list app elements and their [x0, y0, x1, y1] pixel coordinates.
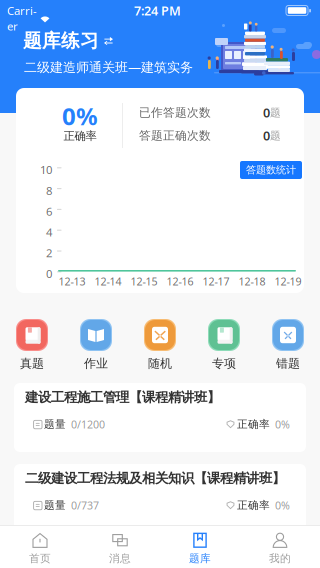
- button[interactable]: 首页: [0, 530, 80, 566]
- staticText: 题: [270, 129, 281, 142]
- button[interactable]: 我的: [240, 530, 320, 566]
- staticText: 12-13: [58, 274, 85, 288]
- staticText: 正确率: [237, 417, 270, 431]
- staticText: 0/1200: [68, 417, 105, 431]
- button[interactable]: 作业: [64, 319, 128, 371]
- button[interactable]: 答题数统计: [240, 161, 302, 179]
- staticText: 我的: [269, 552, 291, 565]
- staticText: 8: [46, 183, 52, 198]
- staticText: 答题数统计: [246, 164, 296, 176]
- staticText: 12-18: [238, 274, 265, 288]
- staticText: 正确率: [63, 129, 96, 143]
- staticText: 12-17: [202, 274, 229, 288]
- button[interactable]: 二级建设工程法规及相关知识【课程精讲班】: [14, 464, 306, 533]
- staticText: 已作答题次数: [139, 105, 211, 120]
- staticText: 二级建造师通关班—建筑实务: [24, 58, 193, 76]
- staticText: 12-19: [274, 274, 301, 288]
- staticText: 0: [46, 266, 52, 281]
- staticText: 4: [46, 224, 52, 240]
- staticText: 6: [46, 204, 52, 219]
- staticText: 7:24 PM: [134, 2, 181, 19]
- button[interactable]: 建设工程施工管理【课程精讲班】: [14, 383, 306, 452]
- staticText: 首页: [29, 552, 51, 565]
- button[interactable]: 题库: [160, 530, 240, 566]
- staticText: 0%: [272, 417, 290, 431]
- staticText: 10: [40, 162, 52, 177]
- staticText: 随机: [148, 356, 172, 371]
- staticText: 0%: [62, 100, 98, 132]
- button[interactable]: 消息: [80, 530, 160, 566]
- button[interactable]: 随机: [128, 319, 192, 371]
- staticText: 12-16: [166, 274, 193, 288]
- staticText: 建设工程施工管理【课程精讲班】: [25, 389, 220, 406]
- staticText: 答题正确次数: [139, 128, 211, 143]
- button[interactable]: 专项: [192, 319, 256, 371]
- staticText: 0/737: [68, 498, 99, 512]
- button[interactable]: 题库练习: [23, 29, 223, 52]
- button[interactable]: 错题: [256, 319, 320, 371]
- staticText: 题库: [189, 552, 211, 565]
- button[interactable]: 真题: [0, 319, 64, 371]
- staticText: Carrier: [7, 3, 37, 34]
- staticText: 错题: [276, 356, 300, 371]
- staticText: 12-15: [130, 274, 157, 288]
- staticText: 题: [270, 106, 281, 119]
- staticText: 2: [46, 245, 52, 261]
- staticText: 题量: [44, 417, 66, 431]
- staticText: 12-14: [94, 274, 121, 288]
- staticText: 专项: [212, 356, 236, 371]
- staticText: 题量: [44, 498, 66, 512]
- staticText: 0%: [272, 498, 290, 512]
- staticText: 真题: [20, 356, 44, 371]
- staticText: 消息: [109, 552, 131, 565]
- staticText: 0: [263, 104, 270, 121]
- staticText: 作业: [84, 356, 108, 371]
- staticText: 二级建设工程法规及相关知识【课程精讲班】: [25, 470, 285, 487]
- staticText: 正确率: [237, 498, 270, 512]
- staticText: 0: [263, 127, 270, 144]
- staticText: 题库练习: [23, 29, 99, 52]
